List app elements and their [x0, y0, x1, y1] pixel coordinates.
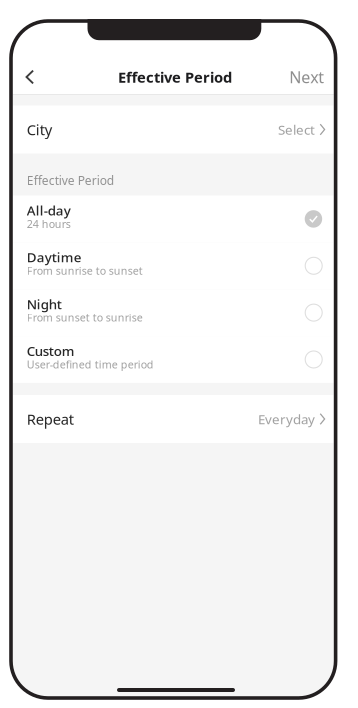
staticText: Daytime — [27, 248, 82, 266]
button[interactable]: Night — [13, 289, 334, 336]
button[interactable]: Repeat — [13, 395, 334, 443]
staticText: Next — [289, 66, 324, 88]
button[interactable]: Next — [281, 59, 332, 95]
button[interactable]: City — [13, 105, 334, 153]
button[interactable]: All-day — [13, 195, 334, 242]
staticText: Select — [278, 121, 315, 138]
staticText: User-defined time period — [27, 357, 154, 371]
staticText: From sunrise to sunset — [27, 263, 143, 278]
button[interactable]: Back — [15, 59, 45, 95]
staticText: City — [27, 120, 52, 139]
staticText: Custom — [27, 342, 75, 360]
staticText: Effective Period — [27, 172, 114, 188]
staticText: Repeat — [27, 409, 74, 429]
staticText: Effective Period — [118, 67, 232, 87]
staticText: 24 hours — [27, 217, 71, 231]
button[interactable]: Custom — [13, 336, 334, 383]
staticText: All-day — [27, 201, 71, 219]
staticText: Night — [27, 295, 62, 313]
staticText: Everyday — [258, 410, 315, 428]
staticText: From sunset to sunrise — [27, 310, 143, 325]
button[interactable]: Daytime — [13, 242, 334, 289]
